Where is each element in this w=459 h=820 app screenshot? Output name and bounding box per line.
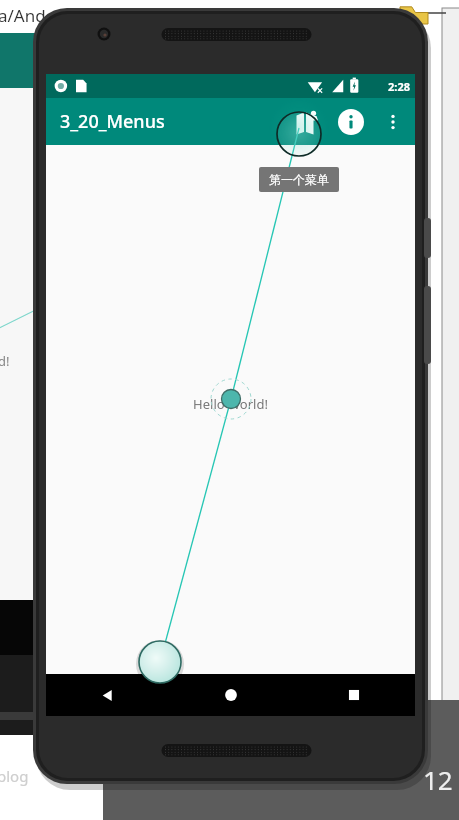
button[interactable]: 第一个菜单 Map [285, 100, 329, 144]
staticText: 第一个菜单 [269, 172, 329, 187]
staticText: d! [0, 352, 10, 370]
button[interactable]: Back [46, 674, 169, 716]
button[interactable]: Recent apps [292, 674, 415, 716]
button[interactable]: Home [169, 674, 292, 716]
staticText: a/And [0, 4, 46, 27]
staticText: blog [0, 766, 29, 786]
staticText: 2:28 [388, 79, 410, 94]
button[interactable]: More options [373, 102, 413, 142]
staticText: Hello World! [193, 395, 268, 413]
button[interactable]: 第一个菜单 [259, 167, 339, 192]
staticText: 3_20_Menus [60, 109, 165, 134]
button[interactable]: Info [329, 100, 373, 144]
staticText: 12 [423, 762, 453, 797]
